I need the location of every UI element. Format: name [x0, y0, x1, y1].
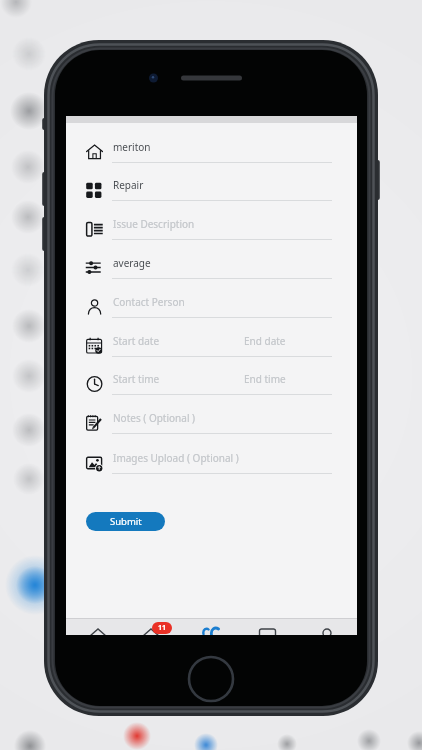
staticText: average: [113, 256, 151, 270]
button[interactable]: [129, 618, 173, 635]
button[interactable]: [81, 329, 337, 361]
button[interactable]: [81, 290, 337, 322]
staticText: Issue Description: [113, 217, 195, 231]
staticText: Contact Person: [113, 295, 185, 309]
button[interactable]: [81, 173, 337, 205]
staticText: meriton: [113, 140, 151, 154]
button[interactable]: [81, 406, 337, 438]
staticText: End time: [244, 372, 286, 386]
staticText: Submit: [110, 515, 142, 528]
staticText: 11: [158, 623, 167, 633]
button[interactable]: [189, 618, 233, 635]
button[interactable]: [76, 618, 120, 635]
staticText: Start date: [113, 334, 160, 348]
button[interactable]: Submit: [86, 512, 165, 531]
button[interactable]: [81, 135, 337, 167]
button[interactable]: [305, 618, 349, 635]
button[interactable]: [81, 446, 337, 478]
button[interactable]: [81, 212, 337, 244]
button[interactable]: [81, 367, 337, 399]
staticText: Repair: [113, 178, 144, 192]
staticText: End date: [244, 334, 286, 348]
staticText: Notes ( Optional ): [113, 411, 196, 425]
staticText: Images Upload ( Optional ): [113, 451, 239, 465]
button[interactable]: [246, 618, 290, 635]
button[interactable]: [81, 251, 337, 283]
staticText: Start time: [113, 372, 160, 386]
